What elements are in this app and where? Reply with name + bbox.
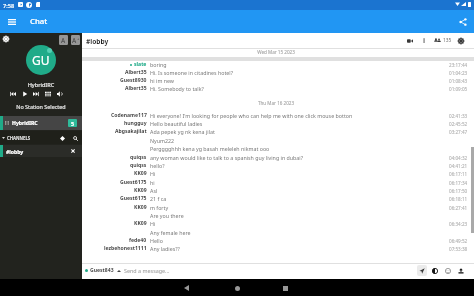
button[interactable]: Send message — [417, 265, 427, 276]
staticText: Thu Mar 16 2023 — [82, 100, 470, 106]
button[interactable]: lezbehonest1111 — [82, 245, 474, 252]
staticText: 135 — [443, 37, 452, 44]
button[interactable]: Are you there — [82, 212, 474, 219]
button[interactable]: hungguy — [82, 120, 474, 127]
staticText: Albert35 — [125, 69, 147, 76]
staticText: 06:17:11 — [449, 171, 468, 177]
staticText: Wed Mar 15 2023 — [82, 49, 470, 55]
button[interactable]: Home — [231, 282, 243, 294]
staticText: hi — [150, 179, 155, 186]
button[interactable]: Search channels — [71, 134, 79, 142]
button[interactable]: Upload file — [456, 265, 466, 276]
button[interactable]: Next track — [32, 90, 40, 98]
staticText: 01:08:43 — [449, 78, 468, 84]
button[interactable]: Playlist — [44, 90, 52, 98]
staticText: i — [423, 36, 426, 46]
button[interactable]: Video call — [405, 36, 415, 46]
button[interactable]: quiqss — [82, 154, 474, 161]
button[interactable]: Volume — [56, 90, 64, 98]
staticText: 06:49:52 — [449, 238, 468, 244]
button[interactable]: Albert35 — [82, 69, 474, 76]
button[interactable]: Recent apps — [279, 282, 291, 294]
button[interactable]: quiqss — [82, 162, 474, 169]
button[interactable]: Join channel — [58, 134, 66, 142]
staticText: Asl — [150, 187, 158, 194]
button[interactable]: KK09 — [82, 220, 474, 227]
button[interactable]: Play — [21, 90, 29, 98]
staticText: 7:58 — [3, 2, 15, 10]
button[interactable]: HybridIRC — [0, 116, 82, 130]
staticText: 01:09:05 — [449, 86, 468, 92]
button[interactable]: KK09 — [82, 204, 474, 211]
button[interactable]: Insert emoji — [443, 265, 453, 276]
staticText: 23:17:44 — [449, 62, 468, 68]
button[interactable]: Account avatar — [26, 45, 56, 75]
button[interactable]: #lobby — [0, 145, 82, 157]
staticText: HybridIRC — [12, 120, 38, 127]
button[interactable]: Abgsakajilat — [82, 128, 474, 135]
staticText: Hi — [150, 170, 156, 177]
button[interactable]: Close channel — [69, 147, 77, 155]
staticText: KK09 — [134, 170, 147, 177]
staticText: boring — [150, 61, 167, 68]
button[interactable]: Guest8930 — [82, 77, 474, 84]
staticText: 02:45:52 — [449, 121, 468, 127]
button[interactable]: Guest6175 — [82, 195, 474, 202]
button[interactable]: KK09 — [82, 187, 474, 194]
button[interactable]: Decrease font size — [59, 35, 68, 45]
staticText: 5 — [71, 120, 75, 127]
button[interactable]: KK09 — [82, 170, 474, 177]
button[interactable]: Albert35 — [82, 85, 474, 92]
button[interactable]: slate — [82, 61, 474, 68]
staticText: 01:04:23 — [449, 70, 468, 76]
button[interactable]: Channel info — [419, 36, 429, 46]
staticText: 21 f ca — [150, 195, 167, 202]
button[interactable]: Guest6175 — [82, 179, 474, 186]
button[interactable]: fede40 — [82, 237, 474, 244]
button[interactable]: Toggle dark mode — [430, 265, 440, 276]
button[interactable]: Nyum222 — [82, 137, 474, 144]
button[interactable]: Previous track — [9, 90, 17, 98]
staticText: Abgsakajilat — [115, 128, 147, 135]
button[interactable]: Settings — [1, 34, 10, 43]
staticText: 06:18:11 — [449, 196, 468, 202]
staticText: Chat — [30, 16, 48, 27]
staticText: Hi — [150, 220, 156, 227]
staticText: Guest6175 — [120, 195, 147, 202]
button[interactable]: Open navigation drawer — [4, 14, 19, 29]
button[interactable]: Back — [180, 282, 192, 294]
button[interactable]: Channel settings — [456, 36, 466, 46]
staticText: #lobby — [86, 37, 109, 46]
staticText: 06:34:23 — [449, 221, 468, 227]
staticText: Guest8930 — [120, 77, 147, 84]
staticText: 06:27:41 — [449, 205, 468, 211]
staticText: HybridIRC — [0, 81, 82, 89]
staticText: 07:53:38 — [449, 246, 468, 252]
staticText: Albert35 — [125, 85, 147, 92]
staticText: Are you there — [150, 212, 184, 219]
button[interactable]: Guest843 — [90, 266, 121, 275]
staticText: hi im new — [150, 77, 175, 84]
staticText: Hi. Somebody to talk? — [150, 85, 204, 92]
staticText: Guest843 — [90, 267, 114, 274]
button[interactable]: Pergggghhh kena yg basah meleleh nikmat … — [82, 145, 474, 152]
staticText: m forty — [150, 204, 169, 211]
staticText: Nyum222 — [150, 137, 175, 144]
button[interactable]: CHANNELS — [0, 131, 82, 144]
staticText: quiqss — [130, 162, 147, 169]
staticText: Hi. Is someone in citadines hotel? — [150, 69, 233, 76]
staticText: Ada pepek yg nk kena jilat — [150, 128, 215, 135]
button[interactable]: Codename117 — [82, 112, 474, 119]
button[interactable]: 135 — [434, 36, 452, 45]
staticText: hungguy — [124, 120, 147, 127]
staticText: Any female here — [150, 229, 191, 236]
staticText: KK09 — [134, 187, 147, 194]
button[interactable]: Any female here — [82, 229, 474, 236]
button[interactable]: Increase font size — [71, 35, 80, 45]
staticText: KK09 — [134, 220, 147, 227]
staticText: Pergggghhh kena yg basah meleleh nikmat … — [150, 145, 270, 152]
staticText: No Station Selected — [0, 103, 82, 110]
staticText: 03:27:47 — [449, 129, 468, 135]
staticText: Hello — [150, 237, 163, 244]
button[interactable]: Share — [455, 14, 470, 29]
